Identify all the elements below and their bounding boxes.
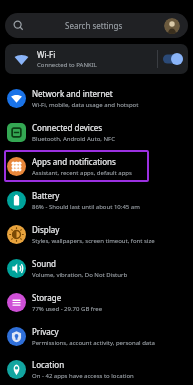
staticText: Connected devices (32, 122, 103, 133)
button[interactable]: Network and internet (0, 81, 193, 115)
button[interactable]: Search settings (5, 13, 188, 38)
staticText: On - 42 apps have access to location (32, 372, 134, 380)
button[interactable]: Sound (0, 251, 193, 285)
staticText: Battery (32, 190, 60, 201)
button[interactable]: Storage (0, 285, 193, 319)
staticText: Permissions, account activity, personal … (32, 339, 155, 347)
staticText: Search settings (65, 20, 123, 31)
staticText: Display (32, 224, 60, 235)
staticText: Wi-Fi, mobile, data usage and hotspot (32, 101, 139, 109)
button[interactable]: Privacy (0, 319, 193, 353)
staticText: 86% - Should last until about 10:45 am (32, 203, 140, 211)
staticText: Bluetooth, Android Auto, NFC (32, 135, 115, 143)
staticText: Volume, vibration, Do Not Disturb (32, 271, 128, 279)
staticText: Wi-Fi (37, 49, 56, 60)
staticText: Connected to PANKIL (37, 61, 97, 69)
button[interactable]: Battery (0, 183, 193, 217)
staticText: Sound (32, 258, 57, 269)
staticText: Styles, wallpapers, screen timeout, font… (32, 237, 155, 245)
button[interactable]: Wi-Fi (5, 44, 188, 74)
staticText: Location (32, 359, 65, 370)
button[interactable]: Account (164, 18, 180, 34)
staticText: Assistant, recent apps, default apps (32, 169, 132, 177)
button[interactable]: Display (0, 217, 193, 251)
button[interactable]: Location (0, 353, 193, 385)
staticText: Privacy (32, 326, 59, 337)
button[interactable]: Apps and notifications (0, 149, 193, 183)
button[interactable]: Connected devices (0, 115, 193, 149)
staticText: Network and internet (32, 88, 113, 99)
staticText: Apps and notifications (32, 156, 116, 167)
staticText: Storage (32, 292, 62, 303)
staticText: 77% used - 29.70 GB free (32, 305, 103, 313)
button[interactable]: Wi-Fi toggle (158, 44, 188, 74)
